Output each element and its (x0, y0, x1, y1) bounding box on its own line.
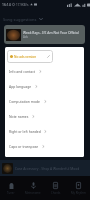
button[interactable]: Song suggestions (3, 14, 90, 24)
staticText: Info and contact (9, 69, 36, 74)
staticText: Song suggestions (3, 17, 37, 22)
button[interactable]: Weak Rays - If I Am Not Your Official (4, 25, 85, 44)
button[interactable]: Computation mode (9, 94, 84, 109)
staticText: App language (9, 84, 32, 89)
staticText: Metronome (25, 191, 41, 195)
button[interactable]: Info and contact (9, 64, 84, 79)
button[interactable]: Metronome (22, 176, 44, 200)
button[interactable]: Chords (44, 176, 67, 200)
staticText: Computation mode (9, 99, 41, 104)
staticText: No ads version (14, 55, 37, 59)
button[interactable]: Note names (9, 109, 84, 124)
button[interactable]: No ads version (10, 50, 50, 63)
staticText: My Rhythm (71, 191, 86, 195)
button[interactable]: Capo or transpose (9, 139, 84, 154)
staticText: Right or left handed (9, 129, 41, 134)
button[interactable]: Tuner (0, 176, 22, 200)
staticText: Capo or transpose (9, 144, 39, 149)
staticText: 17.9KB/s (16, 3, 29, 7)
button[interactable]: Case Accessory - Shop A Wonderful Mood (0, 160, 90, 176)
button[interactable]: My Rhythm (67, 176, 90, 200)
staticText: Note names (9, 114, 29, 119)
staticText: Ads (23, 35, 29, 39)
staticText: Weak Rays - If I Am Not Your Official (23, 30, 79, 34)
button[interactable]: App language (9, 79, 84, 94)
staticText: 16:14 (2, 2, 11, 7)
staticText: Tuner (7, 191, 15, 195)
button[interactable]: Right or left handed (9, 124, 84, 139)
staticText: Chords (51, 191, 61, 195)
staticText: Case Accessory - Shop A Wonderful Mood (15, 166, 80, 170)
